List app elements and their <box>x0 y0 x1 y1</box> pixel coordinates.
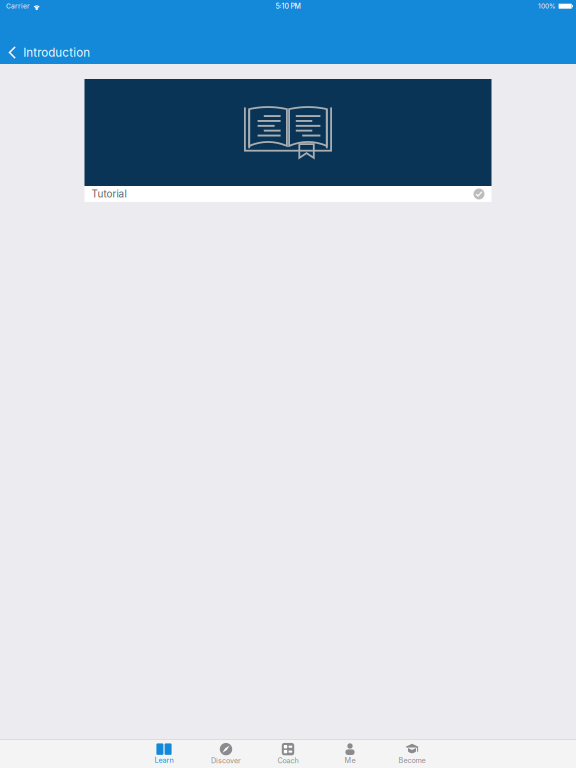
staticText: Introduction <box>23 45 90 59</box>
button[interactable]: Become <box>381 740 443 768</box>
button[interactable]: Coach <box>257 740 319 768</box>
staticText: Coach <box>277 756 298 765</box>
staticText: Carrier <box>6 2 30 10</box>
button[interactable]: Tutorial <box>84 79 491 202</box>
button[interactable]: Discover <box>195 740 257 768</box>
button[interactable]: Me <box>319 740 381 768</box>
staticText: Discover <box>211 756 241 765</box>
staticText: Become <box>398 756 425 765</box>
staticText: 100% <box>538 2 556 10</box>
staticText: Me <box>344 756 355 765</box>
button[interactable]: Introduction <box>0 25 100 62</box>
staticText: Learn <box>154 756 173 765</box>
staticText: 5:10 PM <box>275 2 300 10</box>
button[interactable]: Learn <box>133 740 195 768</box>
staticText: Tutorial <box>91 188 126 200</box>
